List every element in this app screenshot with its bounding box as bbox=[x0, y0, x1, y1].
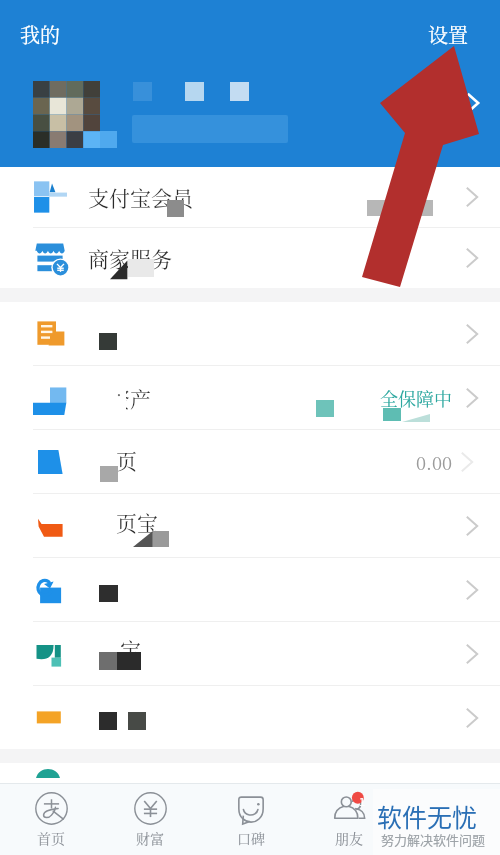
button[interactable] bbox=[0, 763, 500, 803]
button[interactable]: 页宝 bbox=[0, 494, 500, 557]
staticText: 0.00 bbox=[416, 449, 452, 475]
staticText: 财富 bbox=[136, 828, 164, 848]
button[interactable]: 财富 bbox=[106, 787, 194, 851]
staticText: 1 bbox=[359, 793, 366, 809]
staticText: 口碑 bbox=[237, 828, 265, 848]
staticText: 我的 bbox=[20, 20, 60, 49]
button[interactable] bbox=[0, 302, 500, 365]
button[interactable] bbox=[0, 686, 500, 749]
button[interactable]: 总资产 bbox=[0, 366, 500, 429]
button[interactable]: 0.00 bbox=[0, 430, 500, 493]
staticText: · bbox=[116, 381, 122, 407]
button[interactable]: 1 bbox=[305, 787, 393, 851]
staticText: 全保障中 bbox=[380, 385, 452, 411]
button[interactable]: 商家服务 bbox=[0, 228, 500, 288]
staticText: 软件无忧 bbox=[377, 798, 478, 834]
staticText: 页宝 bbox=[116, 507, 158, 537]
staticText: 宝 bbox=[120, 634, 141, 664]
staticText: 朋友 bbox=[335, 828, 363, 848]
button[interactable]: 宝 bbox=[0, 622, 500, 685]
staticText: 总资产 bbox=[88, 383, 151, 413]
button[interactable]: 首页 bbox=[7, 787, 95, 851]
button[interactable] bbox=[0, 558, 500, 621]
button[interactable]: 支付宝会员 bbox=[0, 167, 500, 227]
button[interactable]: Profile details bbox=[458, 88, 488, 118]
staticText: 商家服务 bbox=[88, 243, 172, 273]
staticText: 支付宝会员 bbox=[88, 182, 193, 212]
staticText: 努力解决软件问题 bbox=[381, 830, 486, 849]
button[interactable]: 口碑 bbox=[207, 787, 295, 851]
staticText: 首页 bbox=[37, 828, 65, 848]
staticText: 页 bbox=[116, 445, 137, 475]
staticText: 设置 bbox=[428, 20, 468, 49]
button[interactable]: 设置 bbox=[428, 20, 468, 49]
